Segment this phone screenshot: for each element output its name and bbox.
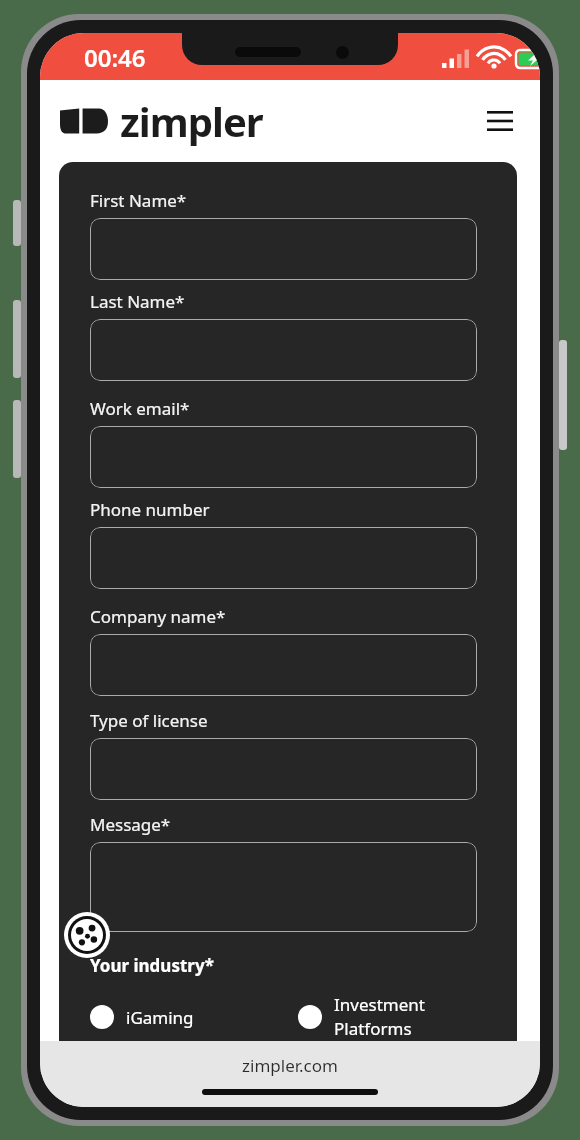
button[interactable] (90, 527, 477, 589)
staticText: First Name* (90, 189, 187, 212)
staticText: Investment Platforms (334, 993, 425, 1040)
staticText: Last Name* (90, 290, 185, 313)
staticText: Your industry* (90, 954, 214, 977)
button[interactable] (90, 319, 477, 381)
button[interactable] (90, 426, 477, 488)
staticText: Work email* (90, 397, 190, 420)
staticText: Company name* (90, 605, 226, 628)
button[interactable]: Open menu (474, 95, 526, 147)
staticText: iGaming (126, 1006, 194, 1029)
button[interactable]: zimpler.com (242, 1054, 338, 1077)
button[interactable]: Investment Platforms (298, 993, 425, 1040)
staticText: zimpler (120, 94, 263, 148)
staticText: Type of license (90, 709, 208, 732)
staticText: Phone number (90, 498, 210, 521)
staticText: 00:46 (84, 41, 146, 74)
button[interactable] (90, 634, 477, 696)
button[interactable]: iGaming (90, 1005, 270, 1029)
staticText: Message* (90, 813, 171, 836)
button[interactable] (90, 738, 477, 800)
button[interactable] (90, 218, 477, 280)
button[interactable] (90, 842, 477, 932)
